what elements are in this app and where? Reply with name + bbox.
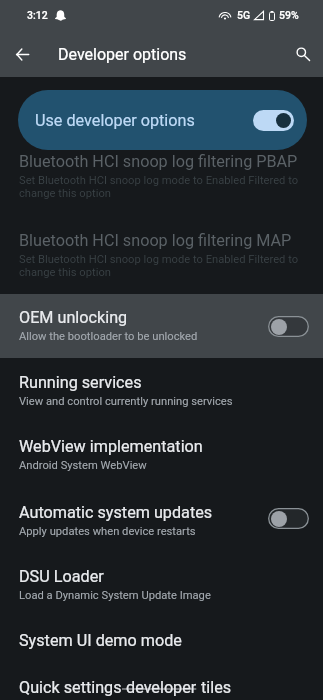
staticText: Running services — [19, 373, 142, 392]
staticText: Automatic system updates — [19, 503, 213, 522]
staticText: Developer options — [58, 45, 187, 64]
staticText: Android System WebView — [19, 459, 147, 472]
staticText: OEM unlocking — [19, 308, 128, 327]
button[interactable]: System UI demo mode — [0, 614, 323, 662]
staticText: Allow the bootloader to be unlocked — [19, 330, 198, 343]
button[interactable]: WebView implementation — [0, 422, 323, 486]
button[interactable]: Bluetooth HCI snoop log filtering PBAP — [0, 138, 323, 217]
staticText: Use developer options — [35, 111, 195, 130]
button[interactable]: Quick settings — [0, 662, 323, 700]
button[interactable]: Use developer options — [18, 90, 307, 150]
staticText: Apply updates when device restarts — [19, 525, 196, 538]
staticText: Bluetooth HCI snoop log filtering MAP — [19, 231, 292, 250]
button[interactable]: Navigate up — [2, 34, 43, 75]
staticText: 5G — [237, 9, 251, 21]
staticText: Set Bluetooth HCI snoop log mode to Enab… — [19, 174, 307, 200]
staticText: System UI demo mode — [19, 631, 182, 650]
staticText: Bluetooth HCI snoop log filtering PBAP — [19, 152, 298, 171]
staticText: Set Bluetooth HCI snoop log mode to Enab… — [19, 253, 307, 279]
staticText: DSU Loader — [19, 567, 104, 586]
button[interactable]: DSU Loader — [0, 550, 323, 614]
staticText: developer — [122, 678, 201, 697]
button[interactable]: Running services — [0, 358, 323, 422]
staticText: 3:12 — [27, 9, 48, 21]
staticText: Quick settings — [19, 678, 122, 697]
staticText: View and control currently running servi… — [19, 395, 233, 408]
staticText: Load a Dynamic System Update Image — [19, 589, 211, 602]
button[interactable]: Search — [282, 33, 323, 74]
staticText: tiles — [201, 678, 232, 697]
button[interactable]: Automatic system updates — [0, 486, 323, 550]
staticText: WebView implementation — [19, 437, 203, 456]
button[interactable]: OEM unlocking — [0, 294, 323, 358]
button[interactable]: Bluetooth HCI snoop log filtering MAP — [0, 217, 323, 295]
staticText: 59% — [279, 9, 299, 21]
